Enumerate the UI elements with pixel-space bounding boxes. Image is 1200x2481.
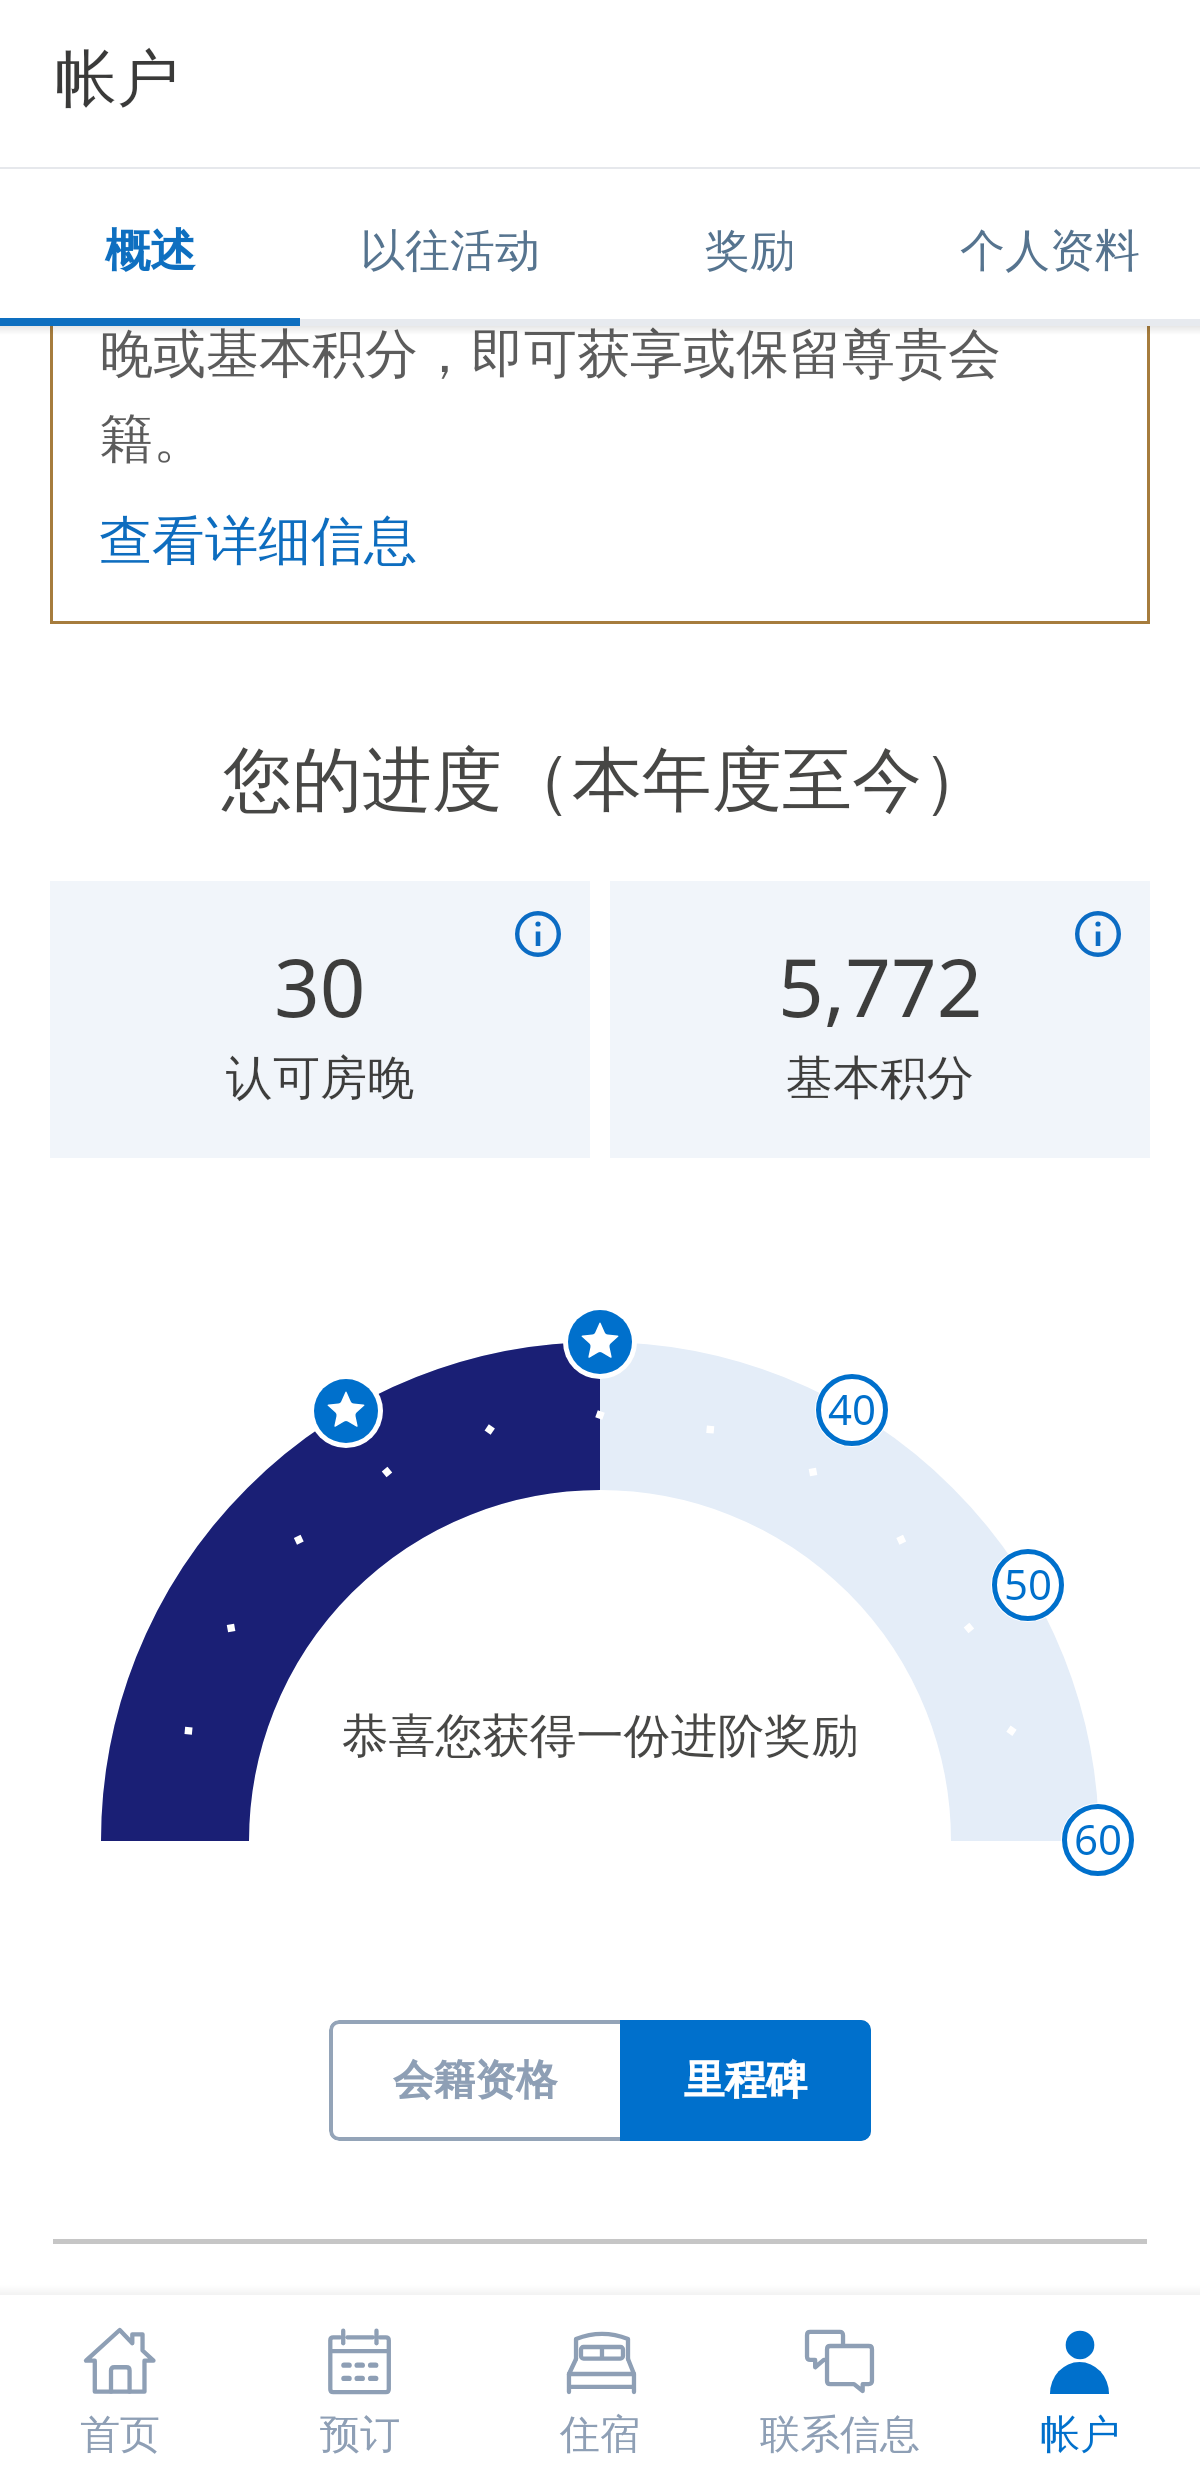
button[interactable]: 会籍资格 [329,2020,620,2141]
staticText: 里程碑 [684,2055,807,2107]
staticText: 会籍资格 [393,2055,557,2107]
button[interactable]: 以往活动 [300,175,600,327]
staticText: 晚或基本积分，即可获享或保留尊贵会 [100,326,1001,388]
button[interactable]: Milestone [309,1374,383,1448]
button[interactable]: 个人资料 [900,175,1200,327]
staticText: 籍。 [100,406,206,473]
staticText: 60 [1061,1810,1135,1867]
button[interactable]: 5,772 [610,881,1150,1158]
staticText: 30 [274,931,366,1040]
staticText: 50 [991,1555,1065,1612]
staticText: 5,772 [778,931,983,1040]
button[interactable]: 查看详细信息 [99,508,419,570]
staticText: 住宿 [560,2409,640,2459]
staticText: 帐户 [1040,2409,1120,2459]
button[interactable]: 概述 [0,175,300,327]
button[interactable]: 奖励 [600,175,900,327]
staticText: 基本积分 [786,1049,974,1108]
staticText: 首页 [80,2409,160,2459]
button[interactable]: 住宿 [480,2290,720,2481]
button[interactable]: 里程碑 [620,2020,871,2141]
staticText: 奖励 [705,223,795,280]
button[interactable]: 首页 [0,2290,240,2481]
button[interactable]: Info [515,911,561,957]
staticText: 您的进度（本年度至今） [7,737,1200,825]
staticText: 概述 [105,223,195,280]
staticText: 预订 [320,2409,400,2459]
button[interactable]: 30 [50,881,590,1158]
staticText: 以往活动 [360,223,540,280]
staticText: 恭喜您获得一份进阶奖励 [0,1707,1200,1766]
staticText: 帐户 [55,40,179,118]
staticText: 个人资料 [960,223,1140,280]
staticText: 联系信息 [760,2409,920,2459]
button[interactable]: 预订 [240,2290,480,2481]
staticText: 40 [815,1380,889,1437]
staticText: 查看详细信息 [99,508,417,570]
button[interactable]: 联系信息 [720,2290,960,2481]
button[interactable]: 帐户 [960,2290,1200,2481]
button[interactable]: Info [1075,911,1121,957]
staticText: 认可房晚 [226,1049,414,1108]
button[interactable]: Milestone [563,1305,637,1379]
